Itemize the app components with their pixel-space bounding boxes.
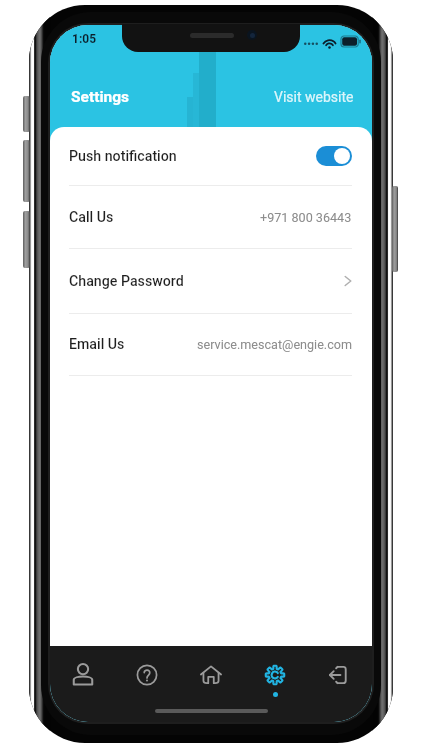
staticText: Call Us (69, 209, 114, 226)
staticText: +971 800 36443 (260, 210, 352, 225)
staticText: Settings (71, 88, 130, 106)
button[interactable]: Call Us (69, 186, 352, 248)
staticText: service.mescat@engie.com (197, 337, 352, 352)
button[interactable]: Push notification (69, 127, 352, 185)
button[interactable]: Visit website (274, 89, 354, 105)
button[interactable]: Email Us (69, 314, 352, 375)
button[interactable]: Settings (243, 646, 307, 700)
button[interactable]: Profile (51, 646, 115, 700)
staticText: Email Us (69, 336, 125, 353)
staticText: Change Password (69, 273, 184, 290)
button[interactable]: Home (179, 646, 243, 700)
button[interactable]: Logout (307, 646, 371, 700)
button[interactable]: Change Password (69, 249, 352, 313)
staticText: 1:05 (72, 32, 97, 46)
staticText: Push notification (69, 148, 177, 165)
staticText: Visit website (274, 89, 354, 105)
button[interactable]: Help (115, 646, 179, 700)
